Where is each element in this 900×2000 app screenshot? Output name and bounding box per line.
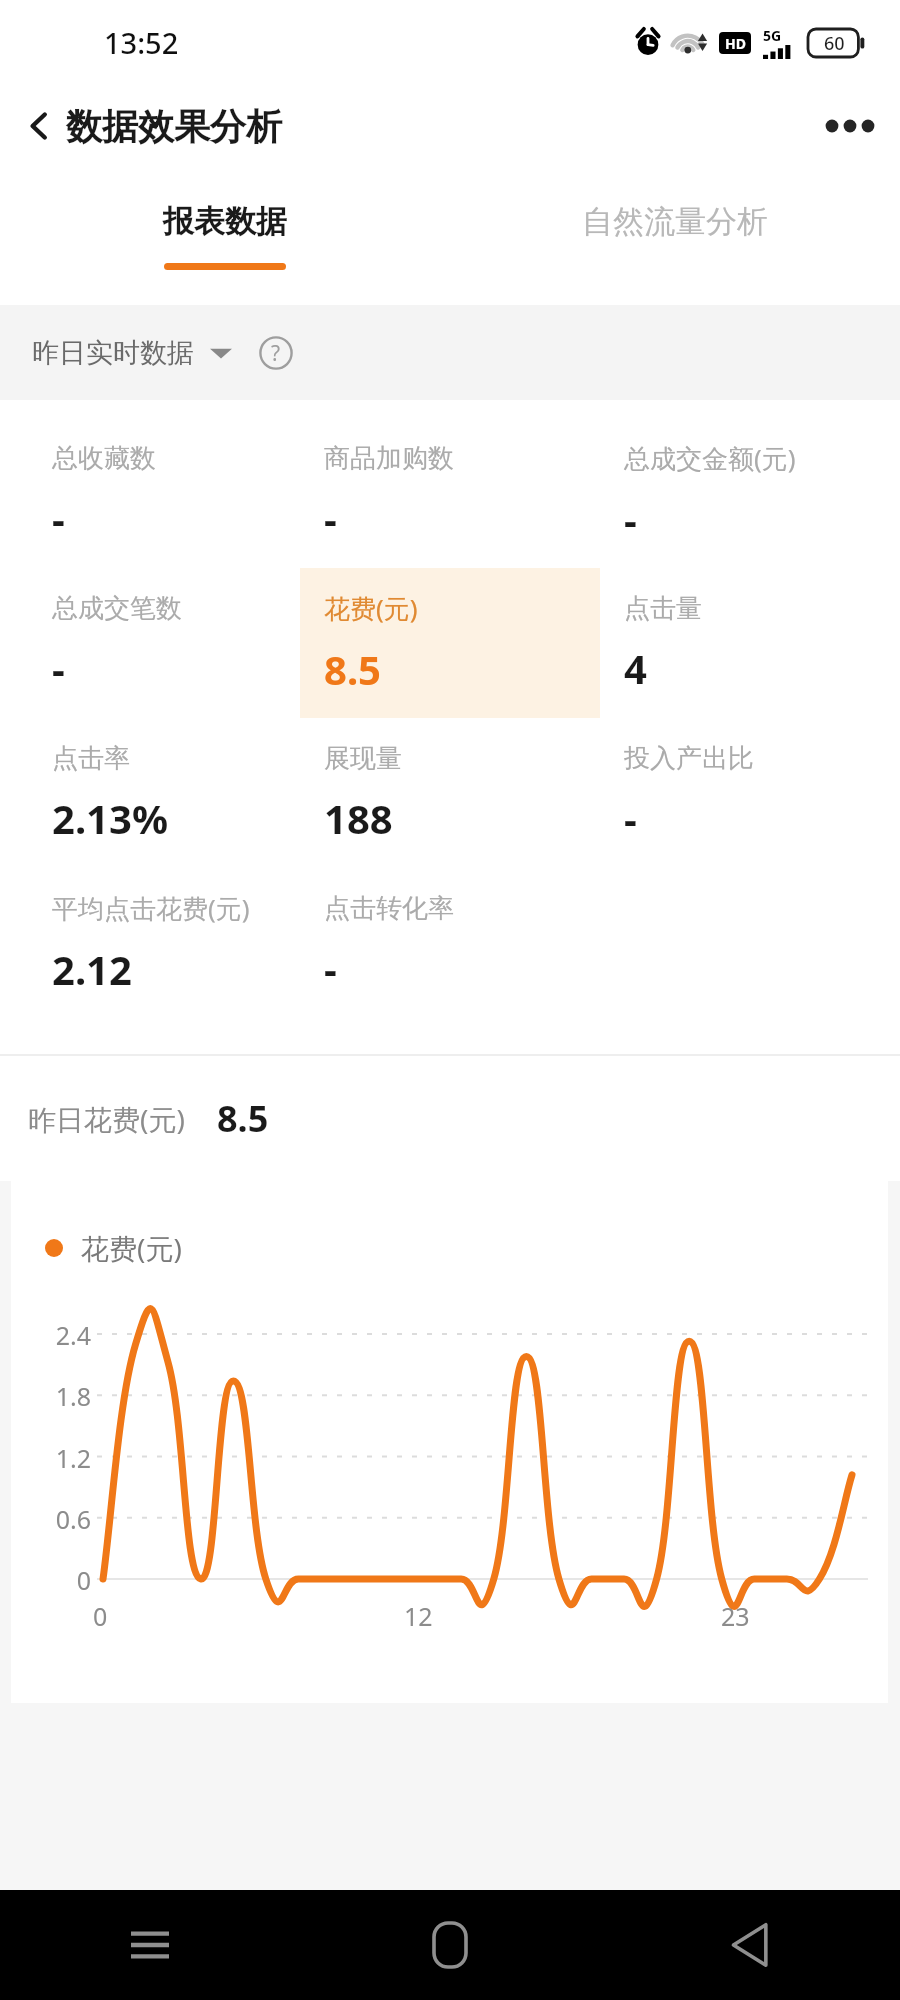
staticText: 2.13% — [52, 791, 168, 845]
staticText: HD — [725, 34, 746, 53]
staticText: ? — [271, 339, 281, 368]
staticText: - — [324, 941, 337, 995]
staticText: 自然流量分析 — [582, 202, 768, 241]
staticText: 13:52 — [104, 23, 179, 62]
button[interactable]: Home — [300, 1890, 600, 2000]
staticText: 8.5 — [324, 642, 381, 696]
staticText: 平均点击花费(元) — [52, 890, 250, 926]
staticText: - — [52, 491, 65, 545]
staticText: 投入产出比 — [624, 742, 754, 775]
staticText: 花费(元) — [81, 1229, 182, 1267]
button[interactable]: 点击量 — [600, 568, 900, 718]
staticText: 12 — [404, 1599, 433, 1633]
staticText: - — [624, 791, 637, 845]
staticText: 0 — [93, 1599, 108, 1633]
staticText: 0 — [35, 1563, 91, 1597]
staticText: 1.2 — [35, 1441, 91, 1475]
staticText: 商品加购数 — [324, 442, 454, 475]
staticText: 花费(元) — [324, 590, 418, 626]
button[interactable]: 点击转化率 — [300, 868, 600, 1018]
button[interactable]: 总收藏数 — [0, 418, 300, 568]
staticText: 昨日花费(元) — [28, 1100, 185, 1138]
button[interactable]: 总成交金额(元) — [600, 418, 900, 568]
button[interactable]: Help — [254, 331, 298, 375]
staticText: 数据效果分析 — [66, 104, 282, 149]
button[interactable]: 总成交笔数 — [0, 568, 300, 718]
staticText: 点击率 — [52, 742, 130, 775]
button[interactable]: 昨日实时数据 — [26, 330, 238, 376]
button[interactable]: 展现量 — [300, 718, 600, 868]
button[interactable]: Back — [8, 95, 70, 157]
button[interactable]: 投入产出比 — [600, 718, 900, 868]
staticText: 展现量 — [324, 742, 402, 775]
button[interactable]: More options — [812, 88, 888, 164]
staticText: 60 — [824, 31, 845, 56]
button[interactable]: 自然流量分析 — [450, 167, 900, 305]
staticText: 188 — [324, 791, 393, 845]
staticText: 5G — [763, 26, 782, 45]
staticText: 1.8 — [35, 1379, 91, 1413]
staticText: - — [324, 491, 337, 545]
staticText: 报表数据 — [163, 202, 287, 241]
button[interactable]: Recent apps — [0, 1890, 300, 2000]
staticText: 0.6 — [35, 1502, 91, 1536]
button[interactable]: 点击率 — [0, 718, 300, 868]
staticText: 8.5 — [217, 1094, 269, 1143]
staticText: - — [52, 641, 65, 695]
staticText: 总收藏数 — [52, 442, 156, 475]
staticText: 4 — [624, 641, 647, 695]
button[interactable]: 报表数据 — [0, 167, 450, 305]
staticText: 点击转化率 — [324, 892, 454, 925]
button[interactable]: 平均点击花费(元) — [0, 868, 300, 1018]
staticText: 昨日实时数据 — [32, 336, 194, 370]
staticText: 2.4 — [35, 1318, 91, 1352]
staticText: 总成交金额(元) — [624, 440, 796, 476]
staticText: 2.12 — [52, 942, 132, 996]
button[interactable]: 花费(元) — [300, 568, 600, 718]
staticText: 总成交笔数 — [52, 592, 182, 625]
staticText: 点击量 — [624, 592, 702, 625]
staticText: 23 — [721, 1599, 750, 1633]
staticText: - — [624, 492, 637, 546]
button[interactable]: 商品加购数 — [300, 418, 600, 568]
button[interactable]: Back — [600, 1890, 900, 2000]
